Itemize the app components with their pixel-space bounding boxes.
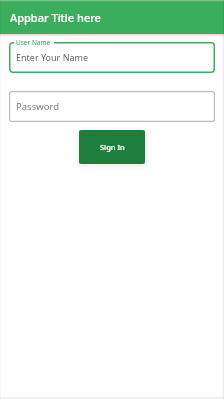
staticText: Appbar Title here: [10, 10, 101, 25]
button[interactable]: Appbar Title here: [0, 0, 224, 34]
staticText: User Name: [16, 38, 51, 47]
button[interactable]: User Name: [9, 42, 215, 73]
staticText: Password: [16, 100, 59, 113]
button[interactable]: Password: [9, 91, 215, 122]
staticText: Sign In: [100, 142, 125, 152]
button[interactable]: Sign In: [79, 130, 145, 164]
staticText: Enter Your Name: [16, 51, 89, 63]
